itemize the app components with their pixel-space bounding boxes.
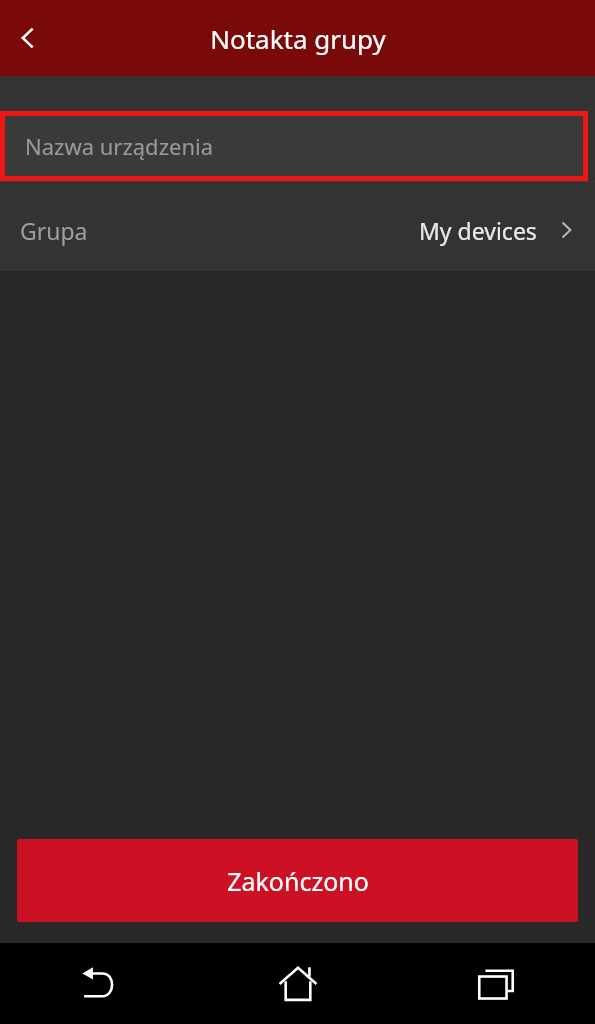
- button[interactable]: Home: [199, 943, 397, 1024]
- button[interactable]: Back: [0, 943, 199, 1024]
- staticText: Nazwa urządzenia: [25, 131, 214, 161]
- staticText: Zakończono: [227, 864, 369, 898]
- button[interactable]: Grupa: [0, 189, 595, 271]
- button[interactable]: Zakończono: [17, 839, 578, 922]
- button[interactable]: Back: [0, 10, 56, 66]
- staticText: Notakta grupy: [210, 21, 386, 56]
- staticText: Grupa: [20, 215, 88, 246]
- button[interactable]: Recents: [397, 943, 595, 1024]
- staticText: My devices: [419, 215, 537, 246]
- button[interactable]: Nazwa urządzenia: [5, 116, 583, 176]
